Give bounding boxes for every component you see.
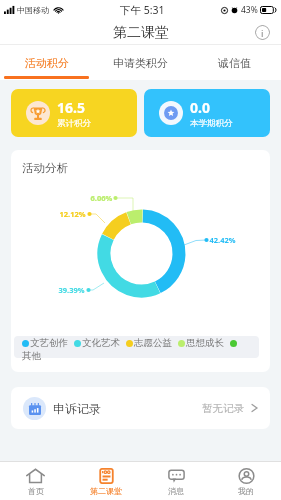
staticText: 中国移动	[17, 5, 49, 15]
button[interactable]: 活动积分	[0, 45, 93, 80]
staticText: 第二课堂	[90, 486, 122, 496]
button[interactable]: 首页	[0, 462, 71, 500]
staticText: 累计积分	[57, 118, 91, 129]
staticText: 活动积分	[25, 56, 69, 70]
staticText: 本学期积分	[190, 118, 233, 129]
staticText: 诚信值	[218, 56, 251, 70]
staticText: 下午 5:31	[120, 3, 165, 17]
button[interactable]: 诚信值	[187, 45, 281, 80]
staticText: 我的	[238, 486, 254, 496]
staticText: 16.5	[57, 98, 85, 117]
button[interactable]: 申诉记录	[11, 387, 270, 429]
button[interactable]: 第二课堂	[71, 462, 141, 500]
staticText: i	[261, 27, 264, 39]
staticText: 活动分析	[22, 161, 68, 175]
staticText: 首页	[28, 486, 44, 496]
staticText: 0.0	[190, 98, 210, 117]
button[interactable]: 0.0	[144, 89, 270, 137]
staticText: 文化艺术	[82, 337, 120, 349]
staticText: 消息	[168, 486, 184, 496]
button[interactable]: 申请类积分	[93, 45, 187, 80]
staticText: 暂无记录	[202, 402, 244, 415]
staticText: 志愿公益	[134, 337, 172, 349]
button[interactable]: 16.5	[11, 89, 137, 137]
staticText: 申请类积分	[113, 56, 168, 70]
staticText: 第二课堂	[113, 24, 169, 42]
staticText: 文艺创作	[30, 337, 68, 349]
button[interactable]: 我的	[211, 462, 281, 500]
staticText: 其他	[22, 350, 41, 362]
button[interactable]: Info	[255, 25, 270, 40]
staticText: 申诉记录	[53, 401, 101, 416]
button[interactable]: 消息	[141, 462, 211, 500]
staticText: 思想成长	[186, 337, 224, 349]
staticText: 43%	[241, 4, 258, 16]
